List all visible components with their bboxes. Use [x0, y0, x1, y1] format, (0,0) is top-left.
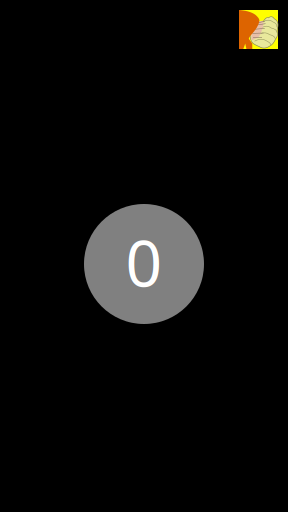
button[interactable]: 0	[84, 204, 204, 324]
staticText: 0	[125, 219, 162, 304]
button[interactable]: App icon	[239, 10, 278, 49]
